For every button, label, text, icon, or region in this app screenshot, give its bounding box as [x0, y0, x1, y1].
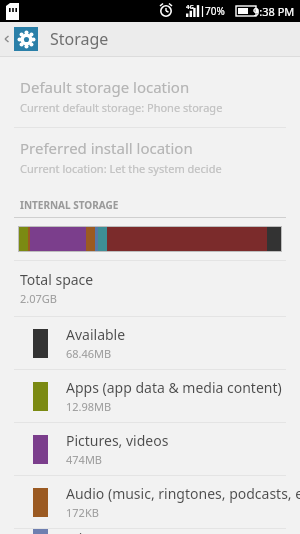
staticText: Current location: Let the system decide: [20, 161, 222, 176]
staticText: Audio (music, ringtones, podcasts, etc.): [66, 484, 300, 503]
staticText: INTERNAL STORAGE: [20, 198, 119, 212]
staticText: Pictures, videos: [66, 431, 169, 450]
staticText: 4G: [186, 3, 194, 11]
staticText: Preferred install location: [20, 138, 193, 158]
staticText: Misc.: [66, 529, 100, 534]
staticText: 474MB: [66, 452, 103, 467]
staticText: 172KB: [66, 505, 99, 520]
button[interactable]: Preferred install location: [0, 128, 300, 188]
button[interactable]: Back: [0, 22, 14, 56]
button[interactable]: Audio (music, ringtones, podcasts, etc.): [0, 476, 300, 528]
staticText: Storage: [50, 28, 109, 50]
button[interactable]: Default storage location: [0, 67, 300, 127]
staticText: 9:38 PM: [253, 4, 295, 19]
staticText: Apps (app data & media content): [66, 378, 282, 397]
staticText: 2.07GB: [20, 291, 57, 306]
staticText: 68.46MB: [66, 346, 112, 361]
button[interactable]: Pictures, videos: [0, 423, 300, 475]
staticText: 70%: [205, 4, 225, 18]
staticText: Available: [66, 325, 126, 344]
staticText: Total space: [20, 270, 94, 289]
button[interactable]: Apps (app data & media content): [0, 370, 300, 422]
button[interactable]: Available: [0, 317, 300, 369]
staticText: Default storage location: [20, 77, 190, 97]
button[interactable]: Total space: [0, 261, 300, 316]
staticText: Current default storage: Phone storage: [20, 100, 223, 115]
button[interactable]: Misc.: [0, 529, 300, 534]
staticText: 12.98MB: [66, 399, 112, 414]
